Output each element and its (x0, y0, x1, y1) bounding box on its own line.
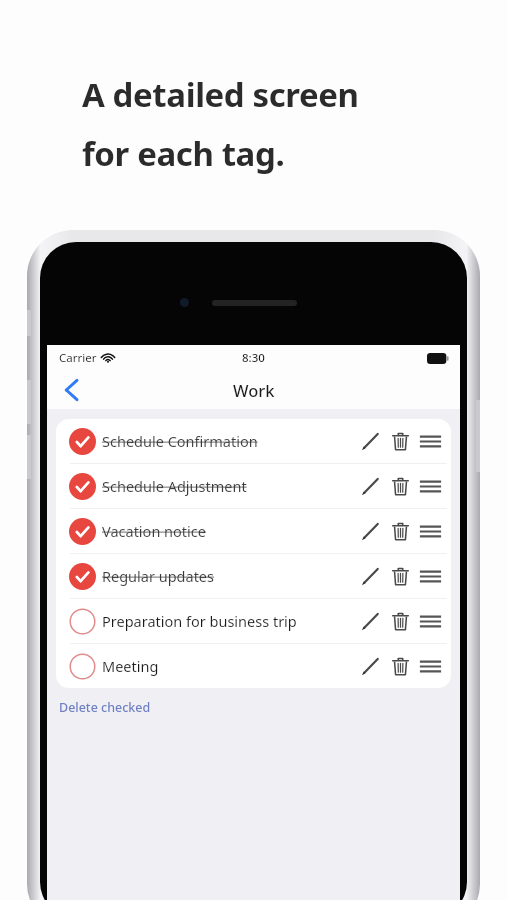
button[interactable]: Reorder Regular updates (415, 561, 445, 591)
button[interactable]: Uncheck Schedule Adjustment (64, 468, 100, 504)
staticText: Regular updates (102, 566, 214, 586)
button[interactable]: Reorder Meeting (415, 651, 445, 681)
button[interactable]: Delete Regular updates (385, 561, 415, 591)
button[interactable]: Edit Regular updates (355, 561, 385, 591)
button[interactable]: Delete Meeting (385, 651, 415, 681)
staticText: Work (233, 379, 275, 401)
button[interactable]: Uncheck Vacation notice (64, 513, 100, 549)
staticText: A detailed screen (82, 72, 359, 117)
staticText: for each tag. (82, 131, 285, 176)
button[interactable]: Edit Schedule Confirmation (355, 426, 385, 456)
button[interactable]: Reorder Vacation notice (415, 516, 445, 546)
staticText: Vacation notice (102, 521, 206, 541)
button[interactable]: Reorder Preparation for business trip (415, 606, 445, 636)
button[interactable]: Uncheck Regular updates (64, 558, 100, 594)
button[interactable]: Check Preparation for business trip (64, 603, 100, 639)
button[interactable]: Check Meeting (64, 648, 100, 684)
button[interactable]: Back (51, 371, 91, 409)
staticText: 8:30 (242, 350, 265, 366)
button[interactable]: Delete Schedule Confirmation (385, 426, 415, 456)
staticText: Meeting (102, 656, 159, 676)
button[interactable]: Delete checked (58, 697, 152, 718)
button[interactable]: Edit Preparation for business trip (355, 606, 385, 636)
button[interactable]: Delete Vacation notice (385, 516, 415, 546)
staticText: Carrier (59, 350, 97, 366)
button[interactable]: Edit Meeting (355, 651, 385, 681)
staticText: Preparation for business trip (102, 611, 297, 631)
staticText: Schedule Confirmation (102, 431, 258, 451)
button[interactable]: Reorder Schedule Adjustment (415, 471, 445, 501)
staticText: Delete checked (59, 699, 151, 716)
button[interactable]: Delete Preparation for business trip (385, 606, 415, 636)
button[interactable]: Edit Vacation notice (355, 516, 385, 546)
button[interactable]: Reorder Schedule Confirmation (415, 426, 445, 456)
button[interactable]: Edit Schedule Adjustment (355, 471, 385, 501)
button[interactable]: Delete Schedule Adjustment (385, 471, 415, 501)
staticText: Schedule Adjustment (102, 476, 247, 496)
button[interactable]: Uncheck Schedule Confirmation (64, 423, 100, 459)
